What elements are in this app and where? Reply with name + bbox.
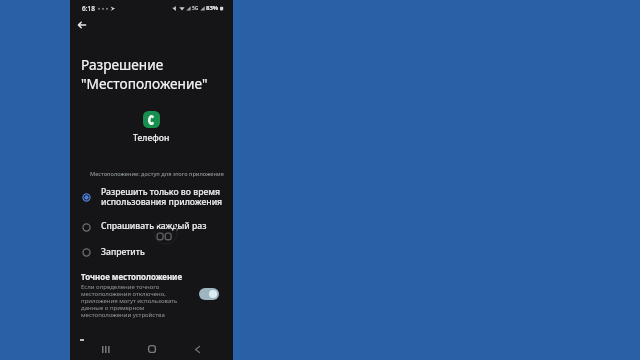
button[interactable]: Спрашивать каждый раз [70, 214, 233, 240]
staticText: 6:18 [82, 4, 95, 13]
button[interactable]: Home [145, 342, 159, 356]
button[interactable]: Back [190, 342, 204, 356]
staticText: Телефон [133, 132, 170, 144]
button[interactable]: Back [74, 17, 90, 33]
staticText: Местоположение: доступ для этого приложе… [90, 170, 224, 178]
button[interactable]: Разрешить только во время использования … [70, 183, 233, 214]
button[interactable]: Recents [98, 342, 112, 356]
staticText: Разрешение "Местоположение" [81, 55, 208, 93]
staticText: Спрашивать каждый раз [101, 220, 207, 232]
button[interactable]: Precise location toggle [199, 288, 219, 300]
staticText: Точное местоположение [81, 272, 183, 283]
staticText: Если определение точного местоположения … [81, 283, 178, 319]
staticText: 83% [206, 4, 219, 12]
staticText: Разрешить только во время использования … [101, 186, 223, 208]
staticText: 5G [192, 5, 199, 12]
staticText: Запретить [101, 246, 145, 258]
button[interactable]: Запретить [70, 240, 233, 266]
